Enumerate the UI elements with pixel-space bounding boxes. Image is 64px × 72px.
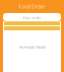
staticText: no meals found xyxy=(19,44,45,50)
staticText: Food Order xyxy=(18,3,45,10)
staticText: Your order xyxy=(22,15,41,20)
